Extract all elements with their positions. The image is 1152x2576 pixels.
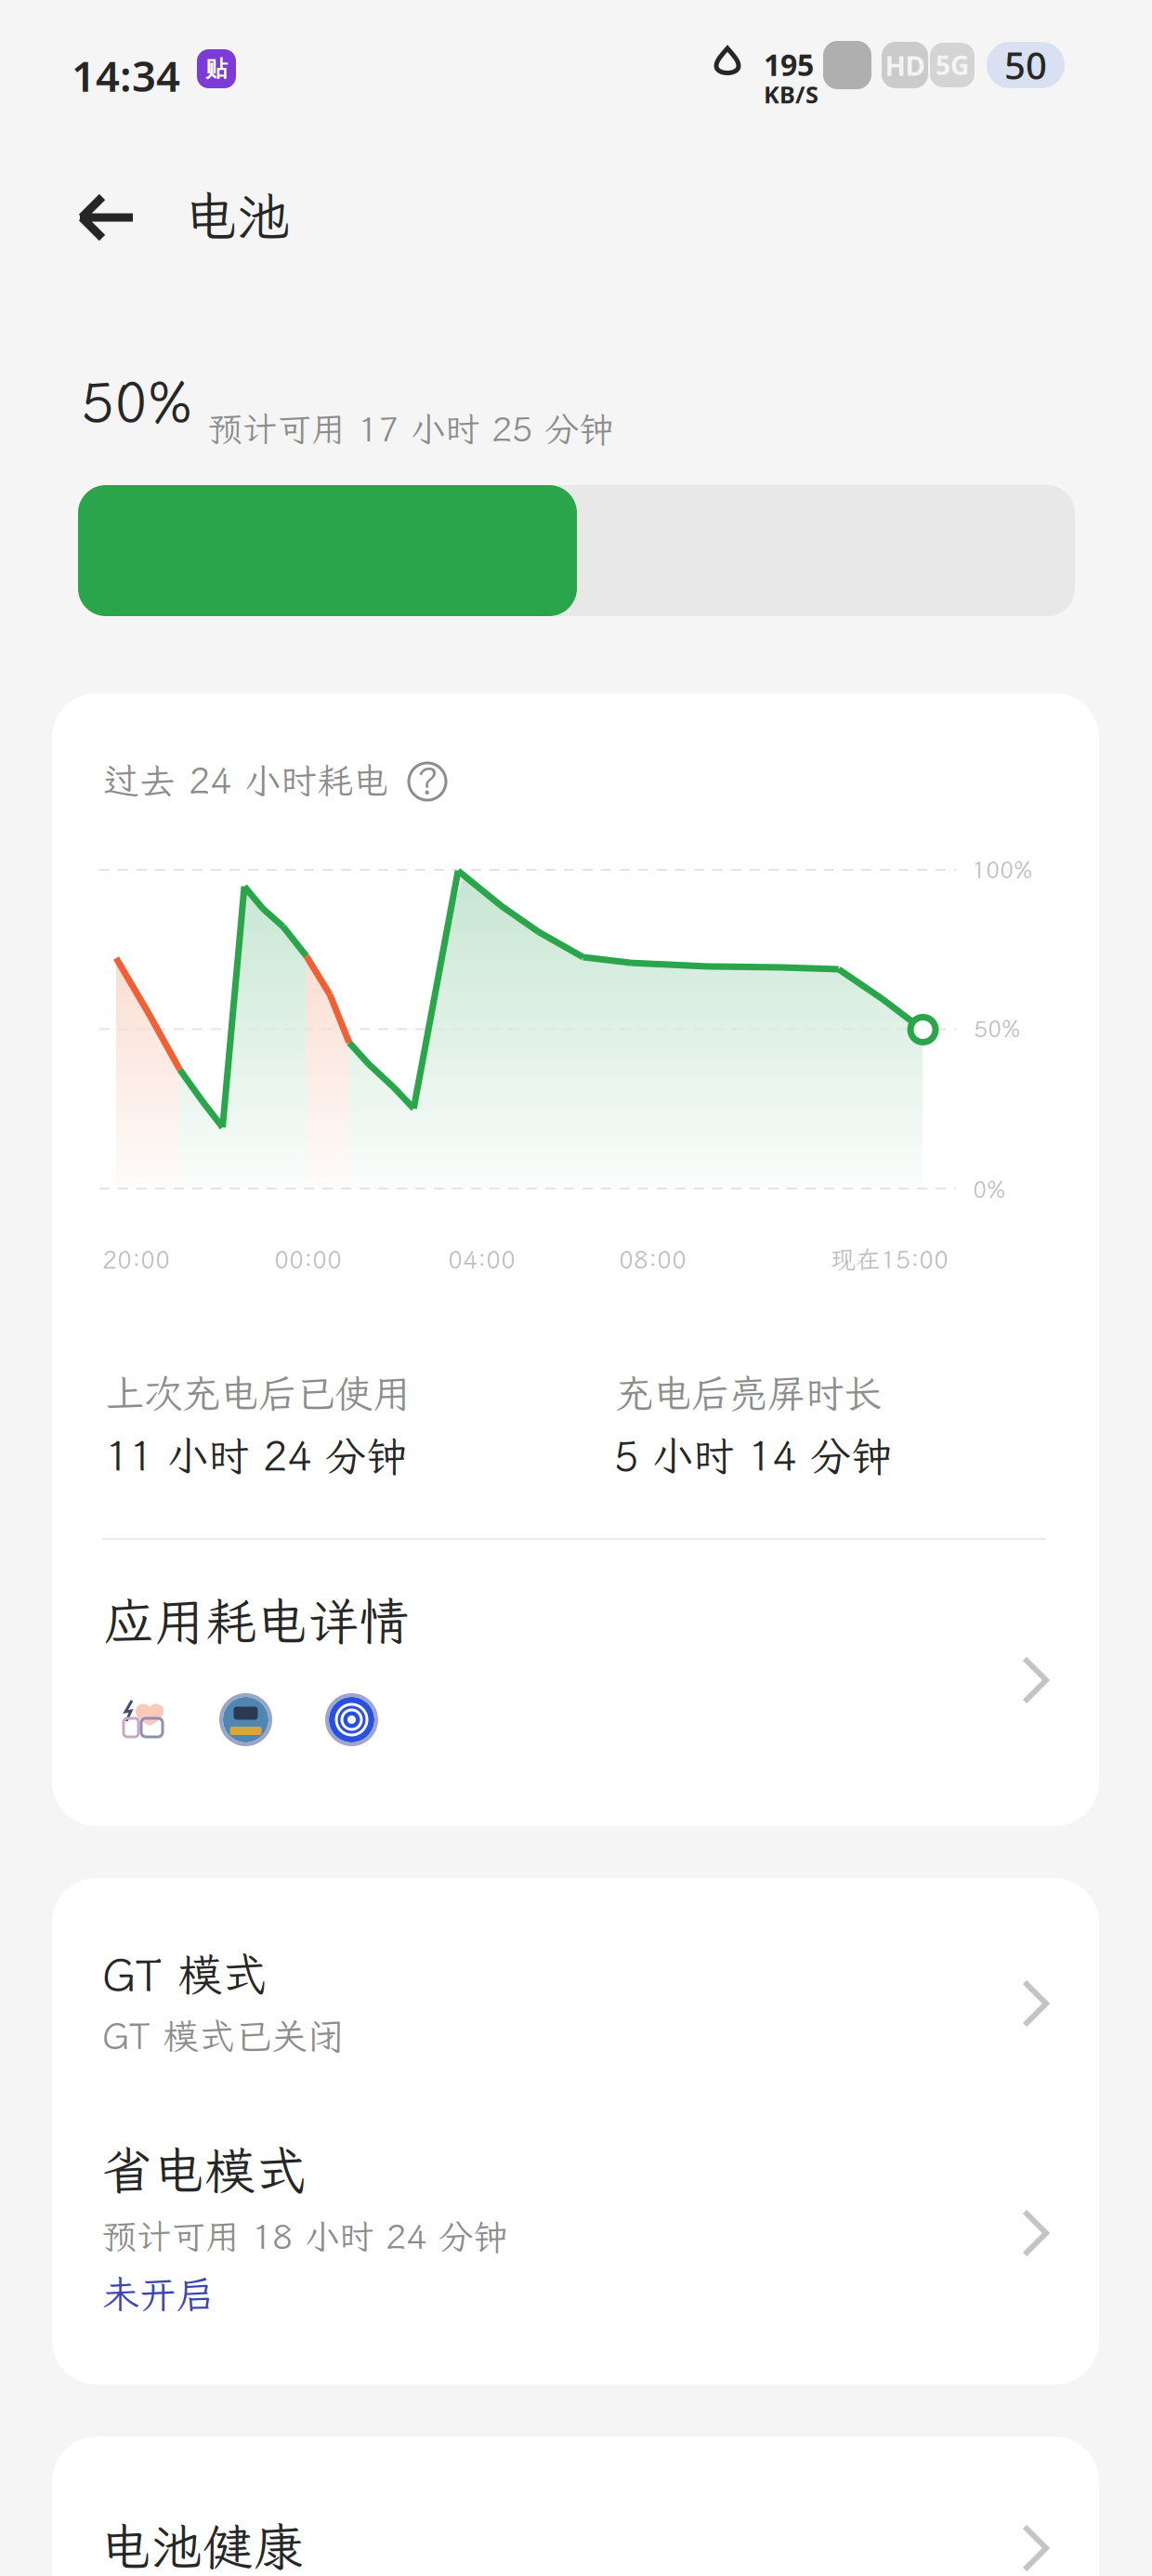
staticText: KB/S	[764, 79, 818, 110]
staticText: 50%	[81, 364, 192, 438]
staticText: 04:00	[448, 1243, 516, 1276]
button[interactable]: 省电模式	[95, 2139, 1080, 2339]
staticText: GT 模式	[102, 1944, 267, 2003]
staticText: 00:00	[274, 1243, 342, 1276]
staticText: 11 小时 24 分钟	[105, 1428, 407, 1482]
staticText: 电池	[184, 181, 290, 251]
staticText: ?	[416, 756, 439, 805]
staticText: 过去 24 小时耗电	[103, 757, 389, 804]
staticText: 上次充电后已使用	[106, 1368, 411, 1418]
staticText: 充电后亮屏时长	[615, 1368, 882, 1418]
staticText: 预计可用 17 小时 25 分钟	[208, 406, 613, 451]
staticText: 现在15:00	[831, 1243, 949, 1276]
staticText: 50%	[974, 1013, 1020, 1044]
staticText: 应用耗电详情	[103, 1587, 410, 1654]
staticText: 0%	[973, 1174, 1005, 1205]
staticText: 100%	[972, 854, 1032, 885]
staticText: 电池健康	[100, 2513, 305, 2576]
staticText: 50	[1004, 40, 1047, 90]
staticText: 14:34	[72, 47, 180, 103]
button[interactable]: GT 模式	[95, 1944, 1080, 2083]
staticText: 5G	[936, 48, 969, 82]
staticText: HD	[885, 47, 925, 83]
button[interactable]: 说明	[395, 749, 460, 814]
staticText: 08:00	[619, 1243, 687, 1276]
staticText: GT 模式已关闭	[102, 2012, 344, 2059]
staticText: 省电模式	[102, 2136, 307, 2203]
button[interactable]: 返回	[56, 176, 156, 259]
staticText: 195	[764, 45, 814, 84]
button[interactable]: 应用耗电详情	[95, 1584, 1080, 1761]
staticText: 20:00	[102, 1243, 170, 1276]
staticText: 未开启	[102, 2269, 214, 2318]
staticText: 5 小时 14 分钟	[614, 1428, 892, 1482]
staticText: 预计可用 18 小时 24 分钟	[102, 2213, 507, 2259]
button[interactable]: 电池健康	[95, 2514, 1080, 2576]
staticText: 贴	[205, 55, 228, 83]
